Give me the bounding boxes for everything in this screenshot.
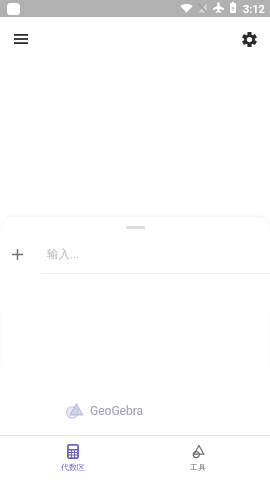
staticText: 代数区 xyxy=(61,462,85,472)
button[interactable]: Settings xyxy=(236,26,262,52)
button[interactable]: 工具 xyxy=(166,436,229,480)
staticText: 3:12 xyxy=(243,3,265,16)
button[interactable]: GeoGebra xyxy=(62,398,149,423)
button[interactable]: 代数区 xyxy=(41,436,104,480)
staticText: 输入... xyxy=(47,247,80,261)
button[interactable]: Menu xyxy=(8,26,34,52)
staticText: 工具 xyxy=(190,462,206,472)
button[interactable]: 输入... xyxy=(0,237,270,271)
staticText: GeoGebra xyxy=(90,404,144,418)
